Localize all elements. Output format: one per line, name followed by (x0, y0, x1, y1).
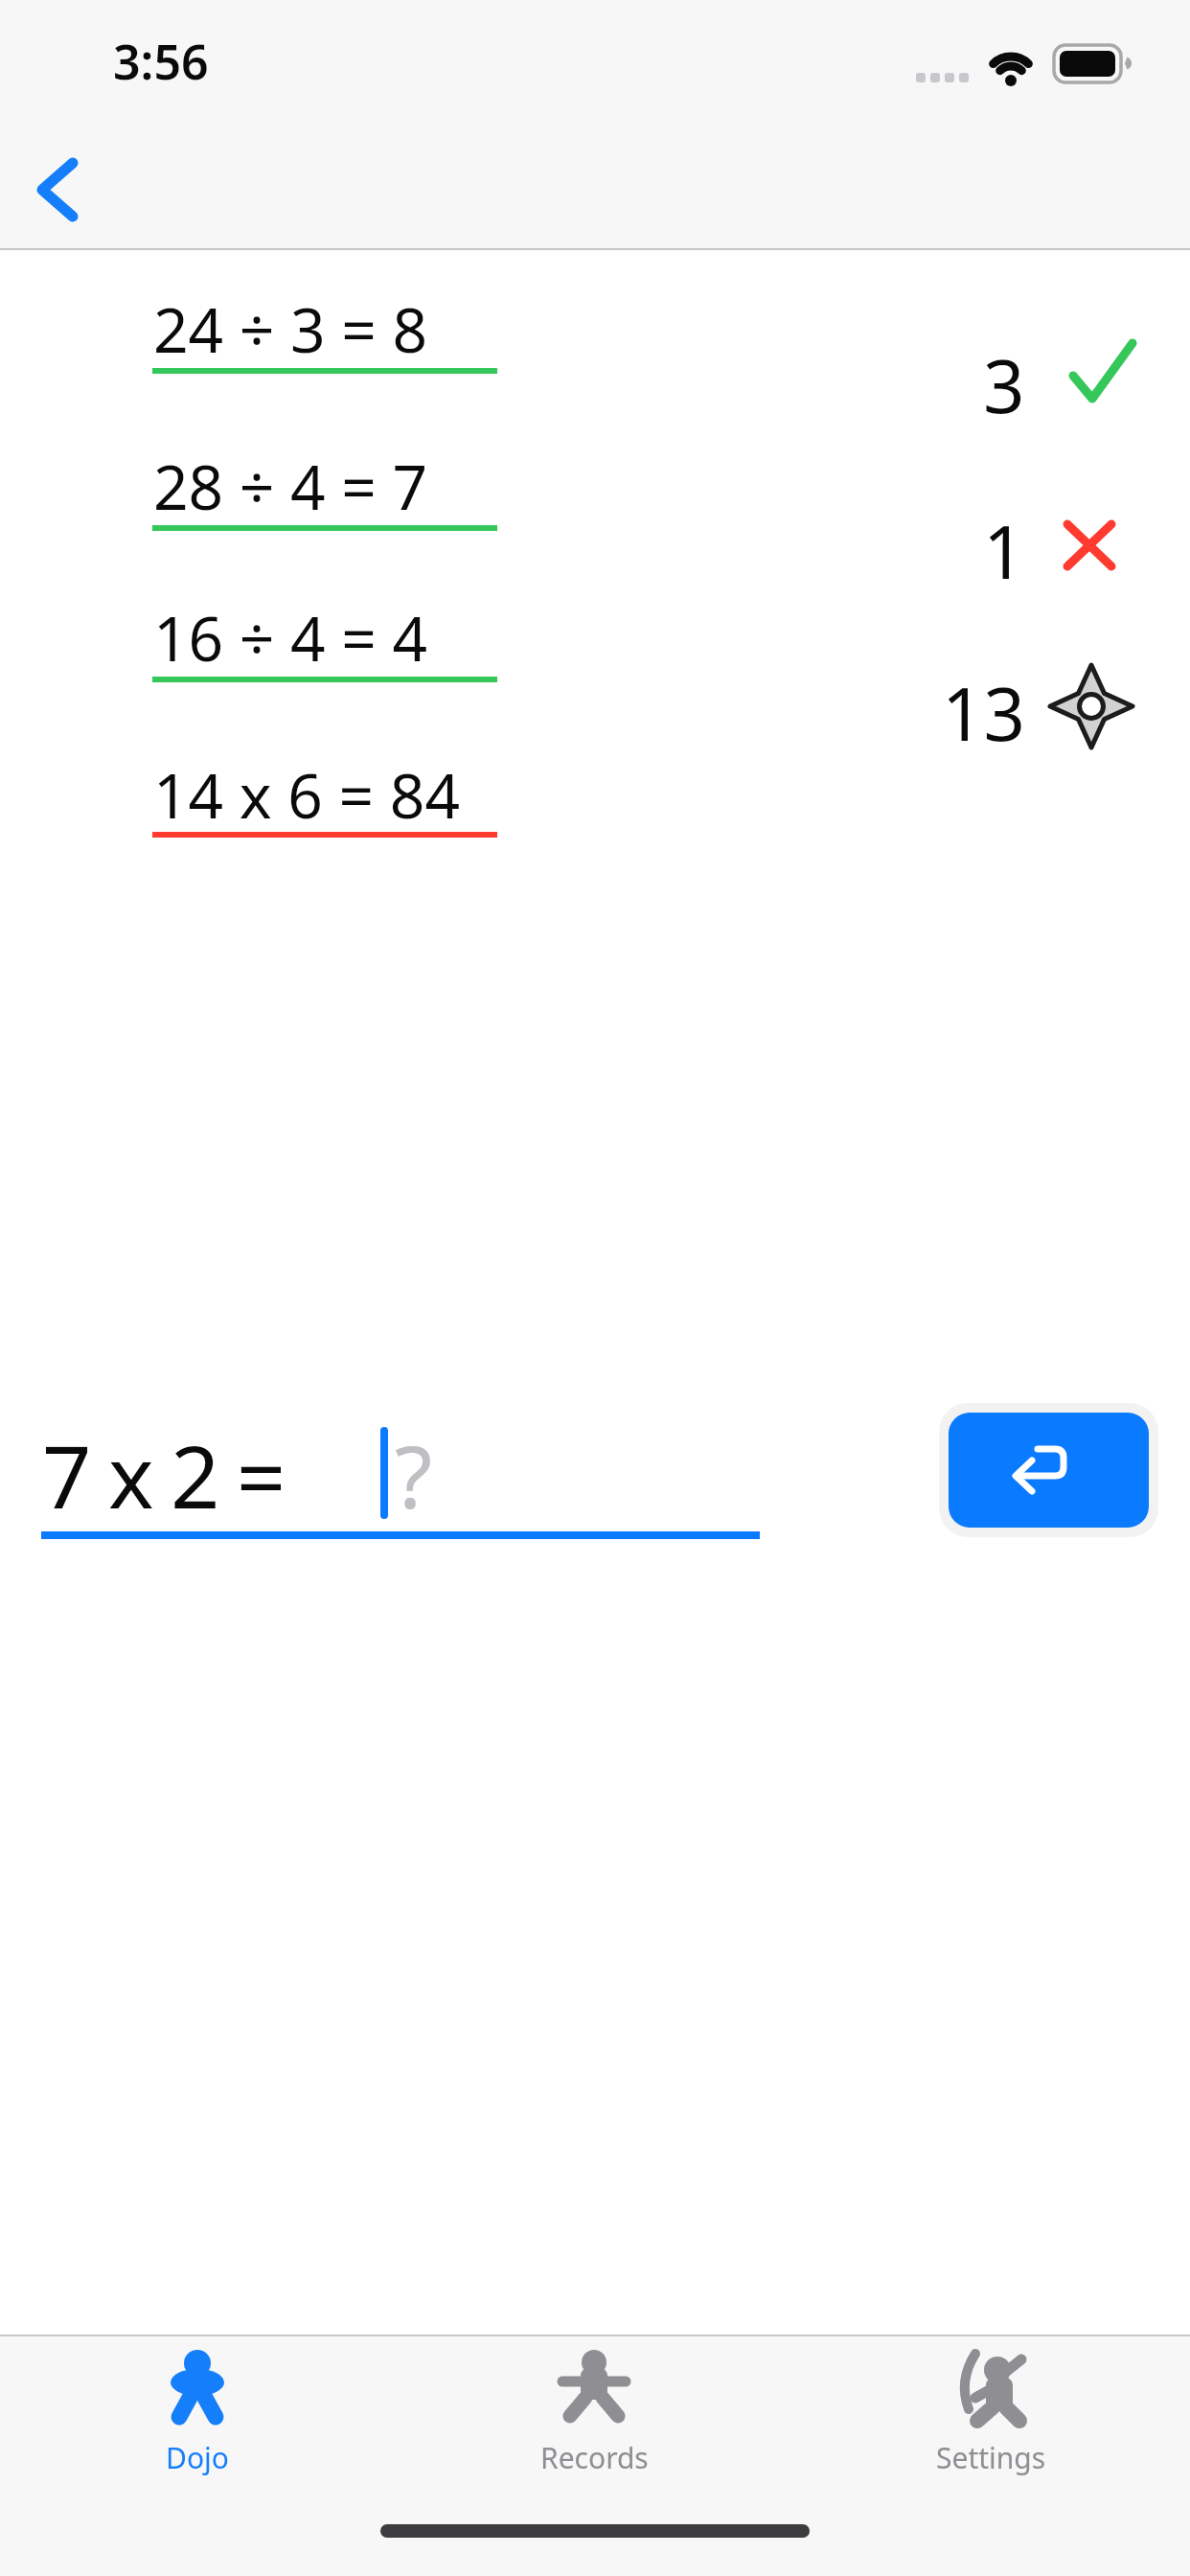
staticText: 24 ÷ 3 = 8 (153, 287, 428, 371)
button[interactable] (949, 1413, 1149, 1528)
staticText: 3 (983, 335, 1025, 422)
staticText: 28 ÷ 4 = 7 (153, 445, 428, 528)
staticText: 3:56 (113, 29, 209, 94)
staticText: 16 ÷ 4 = 4 (153, 596, 428, 679)
staticText: Settings (936, 2438, 1046, 2477)
button[interactable]: Dojo (54, 2350, 341, 2503)
staticText: 13 (942, 663, 1025, 749)
staticText: Records (540, 2438, 649, 2477)
button[interactable]: Records (450, 2350, 738, 2503)
button[interactable]: Settings (847, 2350, 1134, 2503)
staticText: 14 x 6 = 84 (153, 753, 461, 837)
staticText: 1 (983, 501, 1025, 587)
staticText: 7 x 2 = (42, 1416, 284, 1534)
button[interactable] (19, 144, 105, 236)
staticText: Dojo (166, 2438, 229, 2477)
staticText: ? (395, 1416, 433, 1534)
